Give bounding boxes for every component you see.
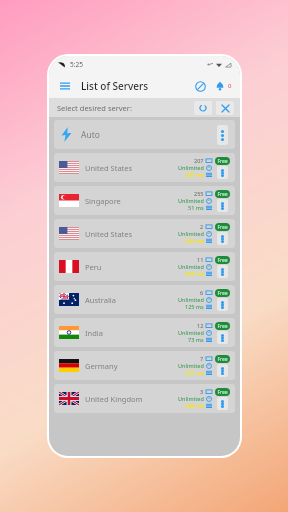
button[interactable]: Free xyxy=(215,223,230,231)
staticText: 255 xyxy=(194,190,204,197)
staticText: 5:25 xyxy=(70,60,83,69)
staticText: 12 xyxy=(197,322,204,329)
button[interactable]: Menu xyxy=(57,78,73,94)
staticText: Free xyxy=(217,290,228,297)
button[interactable]: Free xyxy=(215,190,230,198)
button[interactable]: More options xyxy=(217,397,228,410)
button[interactable]: Refresh xyxy=(194,101,212,115)
button[interactable]: More options xyxy=(217,125,228,145)
staticText: Free xyxy=(217,323,228,330)
button[interactable]: More options xyxy=(217,298,228,311)
button[interactable]: United States xyxy=(54,153,235,182)
button[interactable]: More options xyxy=(217,199,228,212)
staticText: Free xyxy=(217,389,228,396)
staticText: 11 xyxy=(197,256,204,263)
button[interactable]: More options xyxy=(217,232,228,245)
staticText: Unlimited xyxy=(178,395,204,402)
staticText: 7 xyxy=(200,355,204,362)
button[interactable]: Free xyxy=(215,388,230,396)
button[interactable]: Free xyxy=(215,256,230,264)
staticText: Singapore xyxy=(85,196,121,206)
staticText: 207 xyxy=(194,157,204,164)
staticText: Unlimited xyxy=(178,164,204,171)
button[interactable]: Singapore xyxy=(54,186,235,215)
button[interactable]: Free xyxy=(215,157,230,165)
staticText: Free xyxy=(217,257,228,264)
staticText: 353 ms xyxy=(185,270,204,277)
staticText: Free xyxy=(217,224,228,231)
staticText: 305 ms xyxy=(185,171,204,178)
button[interactable]: Block xyxy=(192,78,208,94)
button[interactable]: Australia xyxy=(54,285,235,314)
staticText: 51 ms xyxy=(188,204,204,211)
staticText: United States xyxy=(85,163,133,173)
staticText: India xyxy=(85,328,103,338)
staticText: 251 ms xyxy=(185,369,204,376)
staticText: Free xyxy=(217,158,228,165)
staticText: Unlimited xyxy=(178,329,204,336)
button[interactable]: Auto xyxy=(54,120,235,149)
staticText: Unlimited xyxy=(178,362,204,369)
staticText: 125 ms xyxy=(185,303,204,310)
staticText: Peru xyxy=(85,262,102,272)
staticText: 6 xyxy=(200,289,204,296)
button[interactable]: More options xyxy=(217,166,228,179)
button[interactable]: United Kingdom xyxy=(54,384,235,413)
staticText: Unlimited xyxy=(178,197,204,204)
staticText: Select desired server: xyxy=(57,103,132,113)
button[interactable]: Germany xyxy=(54,351,235,380)
staticText: Germany xyxy=(85,361,118,371)
button[interactable]: Free xyxy=(215,355,230,363)
button[interactable]: Free xyxy=(215,289,230,297)
staticText: List of Servers xyxy=(81,79,149,93)
staticText: Unlimited xyxy=(178,296,204,303)
staticText: United Kingdom xyxy=(85,394,143,404)
staticText: 284 ms xyxy=(185,237,204,244)
staticText: Auto xyxy=(81,129,100,141)
staticText: 220 ms xyxy=(185,402,204,409)
staticText: Australia xyxy=(85,295,116,305)
button[interactable]: Clear xyxy=(216,101,234,115)
staticText: 73 ms xyxy=(188,336,204,343)
staticText: Unlimited xyxy=(178,230,204,237)
button[interactable]: Peru xyxy=(54,252,235,281)
staticText: Free xyxy=(217,191,228,198)
staticText: 0 xyxy=(228,82,232,90)
button[interactable]: United States xyxy=(54,219,235,248)
staticText: Free xyxy=(217,356,228,363)
staticText: 3 xyxy=(200,388,204,395)
button[interactable]: Notifications xyxy=(212,78,228,94)
button[interactable]: More options xyxy=(217,364,228,377)
staticText: United States xyxy=(85,229,133,239)
staticText: Unlimited xyxy=(178,263,204,270)
button[interactable]: Free xyxy=(215,322,230,330)
button[interactable]: India xyxy=(54,318,235,347)
button[interactable]: More options xyxy=(217,331,228,344)
button[interactable]: More options xyxy=(217,265,228,278)
staticText: 2 xyxy=(200,223,204,230)
